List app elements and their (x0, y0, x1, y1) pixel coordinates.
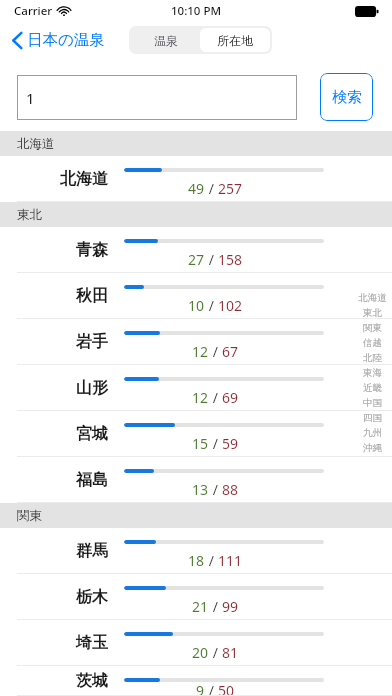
staticText: 9 (196, 681, 205, 696)
button[interactable]: 埼玉 (0, 620, 392, 666)
staticText: 茨城 (76, 671, 108, 691)
button[interactable]: 所在地 (200, 28, 270, 52)
button[interactable]: 福島 (0, 457, 392, 503)
staticText: / (205, 681, 218, 696)
staticText: 111 (218, 551, 243, 570)
staticText: / (209, 434, 222, 453)
staticText: 13 (192, 480, 209, 499)
staticText: 東海 (363, 367, 382, 379)
staticText: 12 (192, 342, 209, 361)
staticText: 検索 (332, 88, 362, 107)
button[interactable]: 北海道 (354, 290, 390, 305)
staticText: 18 (188, 551, 205, 570)
staticText: 北陸 (363, 352, 382, 364)
staticText: 北海道 (60, 169, 108, 189)
button[interactable]: 近畿 (354, 380, 390, 395)
staticText: / (205, 296, 218, 315)
staticText: 信越 (363, 337, 382, 349)
staticText: 日本の温泉 (27, 30, 105, 50)
staticText: / (205, 179, 218, 198)
button[interactable]: 山形 (0, 365, 392, 411)
staticText: / (205, 551, 218, 570)
staticText: 50 (218, 681, 235, 696)
staticText: 59 (222, 434, 239, 453)
staticText: 岩手 (76, 332, 108, 352)
staticText: 12 (192, 388, 209, 407)
staticText: 10 (188, 296, 205, 315)
button[interactable]: 栃木 (0, 574, 392, 620)
staticText: 秋田 (76, 286, 108, 306)
staticText: 四国 (363, 412, 382, 424)
button[interactable]: 関東 (354, 320, 390, 335)
staticText: 近畿 (363, 382, 382, 394)
button[interactable]: 温泉 (131, 28, 200, 52)
staticText: 青森 (76, 240, 108, 260)
button[interactable]: 秋田 (0, 273, 392, 319)
staticText: 東北 (363, 307, 382, 319)
staticText: 88 (222, 480, 239, 499)
staticText: / (209, 388, 222, 407)
button[interactable]: 茨城 (0, 666, 392, 696)
button[interactable]: 信越 (354, 335, 390, 350)
button[interactable]: 岩手 (0, 319, 392, 365)
staticText: 北海道 (358, 292, 387, 304)
button[interactable]: 日本の温泉 (0, 26, 113, 54)
staticText: 102 (218, 296, 243, 315)
button[interactable]: 北海道 (0, 156, 392, 202)
button[interactable]: 1 (17, 75, 297, 120)
button[interactable]: 北陸 (354, 350, 390, 365)
button[interactable]: 検索 (320, 73, 373, 121)
button[interactable]: 青森 (0, 227, 392, 273)
staticText: 257 (218, 179, 243, 198)
staticText: / (209, 643, 222, 662)
staticText: 埼玉 (76, 633, 108, 653)
button[interactable]: 沖縄 (354, 440, 390, 455)
staticText: / (205, 250, 218, 269)
button[interactable]: 群馬 (0, 528, 392, 574)
staticText: 栃木 (76, 587, 108, 607)
staticText: 関東 (17, 508, 42, 524)
staticText: 群馬 (76, 541, 108, 561)
staticText: 67 (222, 342, 239, 361)
staticText: 1 (26, 88, 35, 108)
staticText: 69 (222, 388, 239, 407)
staticText: / (209, 342, 222, 361)
staticText: Carrier (14, 3, 53, 19)
button[interactable]: 九州 (354, 425, 390, 440)
staticText: 福島 (76, 470, 108, 490)
staticText: 158 (218, 250, 243, 269)
staticText: 関東 (363, 322, 382, 334)
staticText: 所在地 (217, 33, 253, 48)
staticText: 北海道 (17, 136, 55, 152)
staticText: 沖縄 (363, 442, 382, 454)
button[interactable]: 中国 (354, 395, 390, 410)
staticText: 中国 (363, 397, 382, 409)
staticText: 九州 (363, 427, 382, 439)
staticText: 27 (188, 250, 205, 269)
staticText: 49 (188, 179, 205, 198)
staticText: 宮城 (76, 424, 108, 444)
staticText: 10:10 PM (171, 3, 222, 19)
staticText: / (209, 480, 222, 499)
staticText: 21 (192, 597, 209, 616)
staticText: 山形 (76, 378, 108, 398)
staticText: 99 (222, 597, 239, 616)
button[interactable]: 東北 (354, 305, 390, 320)
staticText: 20 (192, 643, 209, 662)
staticText: 81 (222, 643, 239, 662)
button[interactable]: 東海 (354, 365, 390, 380)
button[interactable]: 四国 (354, 410, 390, 425)
staticText: 温泉 (154, 33, 178, 48)
button[interactable]: 宮城 (0, 411, 392, 457)
staticText: / (209, 597, 222, 616)
staticText: 東北 (17, 207, 42, 223)
staticText: 15 (192, 434, 209, 453)
